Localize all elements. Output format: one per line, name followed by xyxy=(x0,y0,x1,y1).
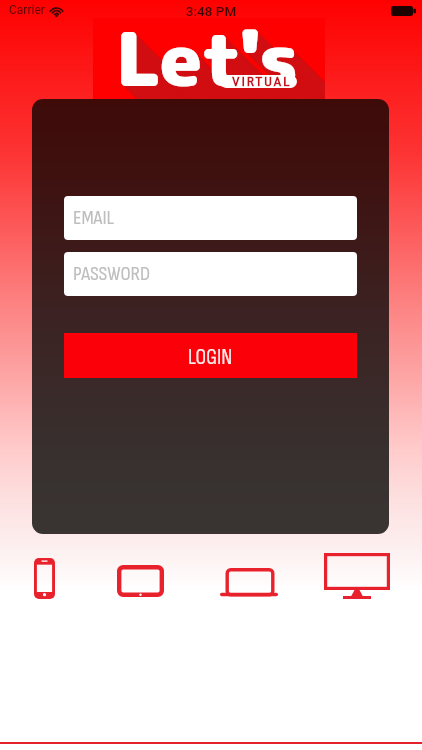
staticText: Let's xyxy=(171,63,325,105)
staticText: Let's xyxy=(120,18,303,99)
staticText: Let's xyxy=(139,31,322,105)
staticText: Let's xyxy=(136,28,319,105)
button[interactable]: PASSWORD xyxy=(64,252,357,296)
staticText: Let's xyxy=(162,54,325,105)
staticText: Let's xyxy=(169,61,325,105)
staticText: Let's xyxy=(175,67,325,105)
staticText: Let's xyxy=(141,33,324,105)
staticText: Let's xyxy=(155,47,325,105)
staticText: Let's xyxy=(172,64,325,105)
staticText: Let's xyxy=(128,20,311,105)
staticText: Let's xyxy=(148,40,325,105)
staticText: Let's xyxy=(163,55,325,105)
staticText: Let's xyxy=(137,29,320,105)
staticText: Let's xyxy=(158,50,325,105)
staticText: VIRTUAL xyxy=(232,73,292,89)
staticText: Let's xyxy=(116,18,299,95)
staticText: Let's xyxy=(152,44,325,105)
staticText: Let's xyxy=(144,36,325,105)
staticText: Let's xyxy=(146,38,325,105)
staticText: Let's xyxy=(166,58,325,105)
staticText: Let's xyxy=(118,18,301,97)
staticText: Let's xyxy=(123,18,306,102)
button[interactable]: EMAIL xyxy=(64,196,357,240)
staticText: Let's xyxy=(167,59,325,105)
staticText: Let's xyxy=(121,18,304,100)
staticText: Let's xyxy=(132,24,315,105)
staticText: PASSWORD xyxy=(73,262,151,287)
staticText: Let's xyxy=(129,21,312,105)
staticText: Let's xyxy=(159,51,325,105)
button[interactable]: Tablet xyxy=(111,545,171,611)
staticText: Carrier xyxy=(9,3,45,17)
staticText: Let's xyxy=(122,18,305,101)
staticText: Let's xyxy=(133,25,316,105)
staticText: Let's xyxy=(176,68,325,105)
staticText: Let's xyxy=(124,18,307,103)
staticText: EMAIL xyxy=(73,206,115,231)
staticText: Let's xyxy=(150,42,325,105)
staticText: Let's xyxy=(156,48,325,105)
button[interactable]: Desktop xyxy=(324,545,384,611)
staticText: Let's xyxy=(164,56,325,105)
staticText: Let's xyxy=(117,18,300,96)
staticText: Let's xyxy=(157,49,325,105)
button[interactable]: Laptop xyxy=(219,545,279,611)
button[interactable]: LOGIN xyxy=(64,333,357,378)
staticText: Let's xyxy=(160,52,325,105)
staticText: Let's xyxy=(168,60,325,105)
staticText: Let's xyxy=(173,65,325,105)
staticText: Let's xyxy=(165,57,325,105)
staticText: Let's xyxy=(134,26,317,105)
staticText: 3:48 PM xyxy=(0,3,422,19)
staticText: Let's xyxy=(177,69,325,105)
staticText: Let's xyxy=(149,41,325,105)
staticText: Let's xyxy=(154,46,325,105)
staticText: Let's xyxy=(140,32,323,105)
staticText: Let's xyxy=(145,37,325,105)
staticText: Let's xyxy=(178,70,325,105)
button[interactable]: Phone xyxy=(14,545,74,611)
staticText: Let's xyxy=(119,18,302,98)
staticText: Let's xyxy=(131,23,314,105)
staticText: Let's xyxy=(127,19,310,105)
staticText: Let's xyxy=(130,22,313,105)
staticText: Let's xyxy=(161,53,325,105)
staticText: Let's xyxy=(138,30,321,105)
staticText: Let's xyxy=(126,18,309,105)
staticText: LOGIN xyxy=(188,345,233,371)
staticText: Let's xyxy=(135,27,318,105)
staticText: Let's xyxy=(170,62,325,105)
staticText: Let's xyxy=(153,45,325,105)
staticText: Let's xyxy=(143,35,325,105)
staticText: Let's xyxy=(147,39,325,105)
staticText: Let's xyxy=(151,43,325,105)
staticText: Let's xyxy=(174,66,325,105)
staticText: Let's xyxy=(125,18,308,104)
staticText: Let's xyxy=(142,34,325,105)
